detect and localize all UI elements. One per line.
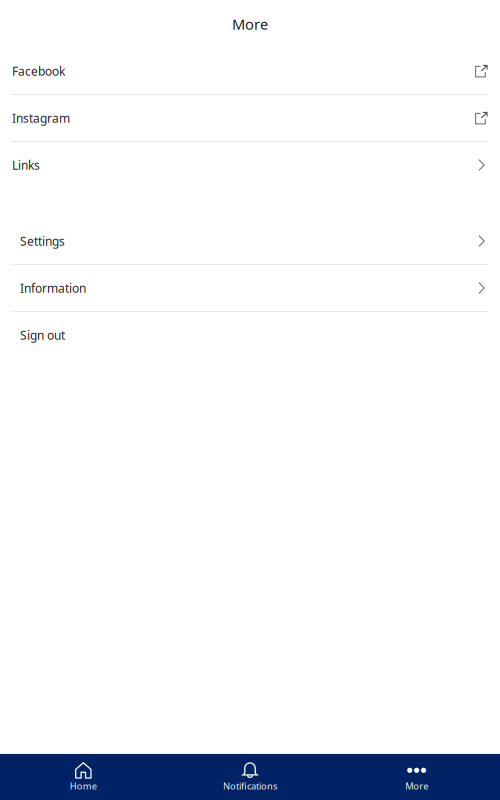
button[interactable]: Facebook xyxy=(0,48,500,94)
staticText: Settings xyxy=(20,233,65,249)
button[interactable]: Notifications xyxy=(167,754,333,800)
staticText: More xyxy=(405,780,428,792)
button[interactable]: More xyxy=(333,754,500,800)
staticText: Notifications xyxy=(223,780,277,792)
button[interactable]: Sign out xyxy=(0,312,500,358)
staticText: Instagram xyxy=(12,110,70,126)
button[interactable]: Home xyxy=(0,754,167,800)
staticText: Information xyxy=(20,280,86,296)
button[interactable]: Information xyxy=(0,265,500,311)
staticText: Links xyxy=(12,157,40,173)
button[interactable]: Settings xyxy=(0,218,500,264)
staticText: Facebook xyxy=(12,63,65,79)
staticText: Sign out xyxy=(20,327,65,343)
button[interactable]: Links xyxy=(0,142,500,188)
button[interactable]: Instagram xyxy=(0,95,500,141)
staticText: More xyxy=(232,14,268,34)
staticText: Home xyxy=(70,780,97,792)
